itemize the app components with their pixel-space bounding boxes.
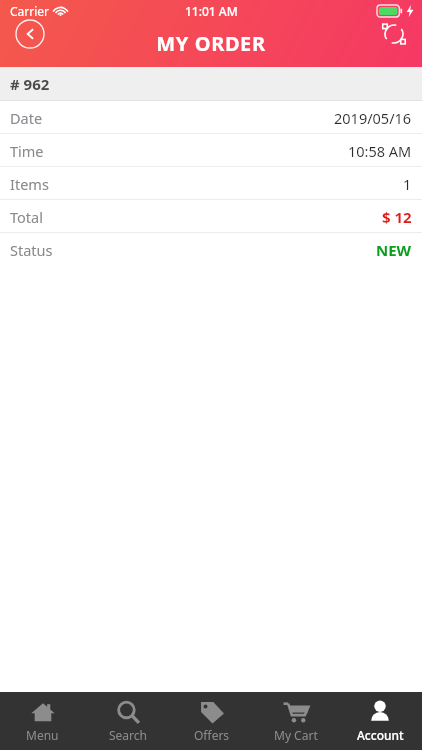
staticText: Offers bbox=[194, 727, 230, 743]
staticText: # 962 bbox=[10, 74, 50, 94]
staticText: 2019/05/16 bbox=[334, 108, 412, 128]
button[interactable]: Items bbox=[0, 167, 422, 200]
staticText: $ 12 bbox=[382, 207, 412, 227]
staticText: Search bbox=[109, 727, 147, 743]
staticText: 11:01 AM bbox=[185, 3, 238, 19]
button[interactable]: Time bbox=[0, 134, 422, 167]
staticText: Account bbox=[357, 727, 404, 743]
staticText: 10:58 AM bbox=[348, 141, 412, 161]
button[interactable]: Total bbox=[0, 200, 422, 233]
staticText: Carrier bbox=[10, 3, 50, 19]
button[interactable]: Search bbox=[85, 692, 170, 750]
button[interactable]: My Cart bbox=[254, 692, 338, 750]
staticText: Status bbox=[10, 240, 53, 260]
staticText: Time bbox=[10, 141, 44, 161]
button[interactable]: Menu bbox=[0, 692, 85, 750]
button[interactable]: Offers bbox=[170, 692, 254, 750]
button[interactable]: Date bbox=[0, 101, 422, 134]
button[interactable]: Account bbox=[338, 692, 422, 750]
staticText: NEW bbox=[376, 240, 412, 260]
staticText: Date bbox=[10, 108, 43, 128]
staticText: MY ORDER bbox=[156, 30, 266, 57]
staticText: My Cart bbox=[274, 727, 318, 743]
button[interactable]: Status bbox=[0, 233, 422, 266]
button[interactable]: Back bbox=[8, 11, 52, 56]
button[interactable]: Refresh bbox=[372, 11, 416, 56]
staticText: Items bbox=[10, 174, 49, 194]
staticText: Total bbox=[10, 207, 43, 227]
staticText: 1 bbox=[403, 174, 412, 194]
staticText: Menu bbox=[26, 727, 59, 743]
